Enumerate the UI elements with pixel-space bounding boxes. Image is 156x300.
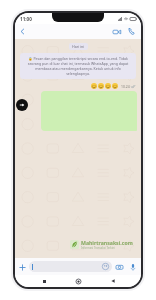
other: Pointer	[16, 99, 28, 111]
button[interactable]: Voice call	[124, 24, 139, 39]
button[interactable]: Video call	[109, 24, 124, 39]
staticText: 🔒 Pesan dan panggilan terenkripsi secara…	[25, 56, 131, 76]
staticText: 10.24	[121, 84, 130, 89]
staticText: Mahirtransaksi.com	[81, 239, 133, 246]
button[interactable]: Camera	[112, 260, 126, 274]
button[interactable]: Attach	[15, 260, 29, 274]
button[interactable]: Recents	[38, 275, 50, 287]
staticText: Informasi Transaksi Terkini	[81, 246, 115, 250]
staticText: Hari ini	[72, 44, 85, 49]
button[interactable]: Voice message	[126, 260, 140, 274]
button[interactable]: Back	[107, 275, 119, 287]
staticText: 11:00	[20, 16, 32, 22]
button[interactable]: Back	[15, 24, 30, 39]
button[interactable]: 🔒 Pesan dan panggilan terenkripsi secara…	[20, 53, 136, 79]
button[interactable]: Home	[72, 275, 84, 287]
button[interactable]	[29, 261, 112, 272]
